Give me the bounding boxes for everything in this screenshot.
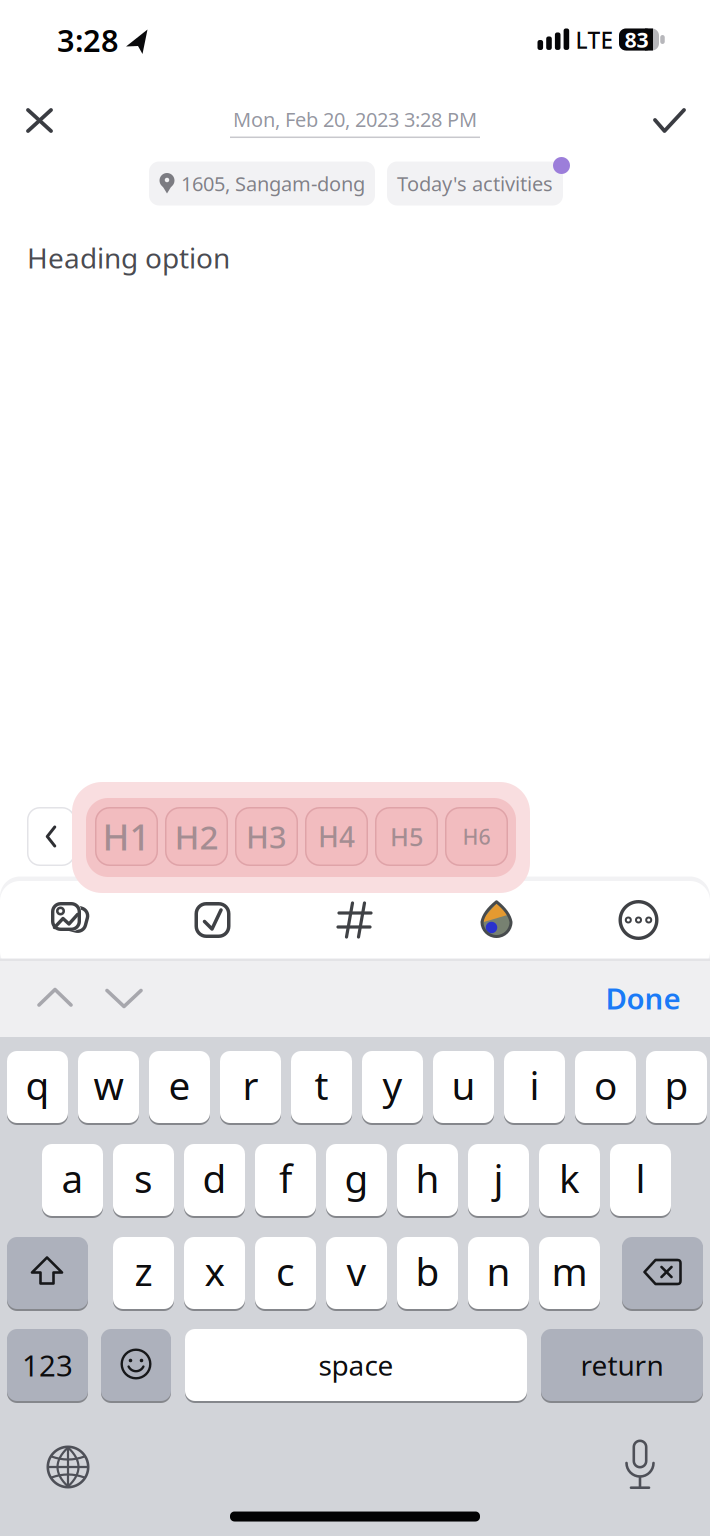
button[interactable]: [653, 108, 686, 133]
staticText: c: [276, 1245, 295, 1297]
button[interactable]: d: [184, 1143, 245, 1217]
button[interactable]: i: [504, 1050, 565, 1124]
button[interactable]: [624, 1439, 656, 1489]
button[interactable]: w: [78, 1050, 139, 1124]
button[interactable]: y: [362, 1050, 423, 1124]
button[interactable]: [618, 900, 658, 940]
staticText: 1605, Sangam-dong: [181, 170, 365, 197]
staticText: H6: [462, 822, 490, 851]
staticText: Mon, Feb 20, 2023 3:28 PM: [233, 106, 477, 133]
staticText: p: [664, 1059, 688, 1111]
staticText: r: [242, 1059, 258, 1111]
button[interactable]: Today's activities: [387, 161, 563, 205]
button[interactable]: [27, 807, 75, 866]
button[interactable]: [101, 1328, 171, 1402]
button[interactable]: [481, 901, 512, 938]
staticText: f: [279, 1152, 292, 1204]
button[interactable]: j: [468, 1143, 529, 1217]
button[interactable]: [105, 989, 142, 1008]
staticText: w: [93, 1059, 123, 1111]
button[interactable]: H2: [165, 807, 228, 866]
staticText: z: [134, 1245, 152, 1297]
staticText: x: [204, 1245, 224, 1297]
staticText: Heading option: [27, 239, 230, 276]
staticText: s: [134, 1152, 153, 1204]
staticText: q: [25, 1059, 49, 1111]
button[interactable]: H6: [445, 807, 508, 866]
button[interactable]: q: [7, 1050, 68, 1124]
button[interactable]: b: [397, 1236, 458, 1310]
button[interactable]: n: [468, 1236, 529, 1310]
staticText: Today's activities: [397, 170, 553, 197]
button[interactable]: [37, 988, 72, 1007]
button[interactable]: [51, 902, 91, 938]
staticText: v: [346, 1245, 366, 1297]
staticText: H2: [174, 814, 218, 859]
button[interactable]: [622, 1236, 703, 1310]
button[interactable]: t: [291, 1050, 352, 1124]
button[interactable]: s: [113, 1143, 174, 1217]
button[interactable]: u: [433, 1050, 494, 1124]
button[interactable]: x: [184, 1236, 245, 1310]
staticText: H3: [246, 816, 287, 857]
button[interactable]: space: [185, 1328, 527, 1402]
staticText: 123: [22, 1345, 73, 1384]
button[interactable]: [23, 105, 56, 136]
staticText: o: [594, 1059, 617, 1111]
staticText: j: [493, 1152, 503, 1204]
button[interactable]: m: [539, 1236, 600, 1310]
button[interactable]: g: [326, 1143, 387, 1217]
staticText: n: [486, 1245, 510, 1297]
staticText: b: [415, 1245, 439, 1297]
button[interactable]: [7, 1236, 88, 1310]
button[interactable]: return: [541, 1328, 703, 1402]
button[interactable]: a: [42, 1143, 103, 1217]
button[interactable]: r: [220, 1050, 281, 1124]
staticText: k: [559, 1152, 580, 1204]
button[interactable]: k: [539, 1143, 600, 1217]
button[interactable]: H3: [235, 807, 298, 866]
staticText: space: [318, 1346, 393, 1384]
button[interactable]: 123: [7, 1328, 88, 1402]
staticText: 83: [624, 25, 648, 54]
button[interactable]: z: [113, 1236, 174, 1310]
staticText: H4: [318, 818, 355, 855]
button[interactable]: [194, 902, 230, 938]
button[interactable]: 1605, Sangam-dong: [149, 161, 375, 205]
staticText: u: [451, 1059, 475, 1111]
staticText: H1: [102, 813, 150, 860]
staticText: g: [344, 1152, 368, 1204]
staticText: a: [61, 1152, 83, 1204]
staticText: 3:28: [57, 20, 119, 60]
button[interactable]: e: [149, 1050, 210, 1124]
button[interactable]: l: [610, 1143, 671, 1217]
button[interactable]: h: [397, 1143, 458, 1217]
button[interactable]: v: [326, 1236, 387, 1310]
button[interactable]: o: [575, 1050, 636, 1124]
button[interactable]: Mon, Feb 20, 2023 3:28 PM: [230, 106, 480, 138]
staticText: e: [168, 1059, 190, 1111]
button[interactable]: p: [646, 1050, 707, 1124]
staticText: d: [202, 1152, 226, 1204]
staticText: LTE: [575, 25, 613, 55]
staticText: i: [529, 1059, 539, 1111]
staticText: y: [382, 1059, 402, 1111]
button[interactable]: H1: [95, 807, 158, 866]
staticText: m: [551, 1245, 587, 1297]
button[interactable]: f: [255, 1143, 316, 1217]
staticText: return: [580, 1346, 663, 1384]
button[interactable]: [46, 1445, 89, 1488]
button[interactable]: H4: [305, 807, 368, 866]
staticText: Done: [605, 978, 680, 1017]
staticText: h: [415, 1152, 439, 1204]
button[interactable]: H5: [375, 807, 438, 866]
staticText: l: [635, 1152, 645, 1204]
button[interactable]: c: [255, 1236, 316, 1310]
button[interactable]: [338, 902, 372, 937]
button[interactable]: Done: [605, 978, 680, 1017]
staticText: H5: [390, 820, 423, 853]
staticText: t: [314, 1059, 328, 1111]
